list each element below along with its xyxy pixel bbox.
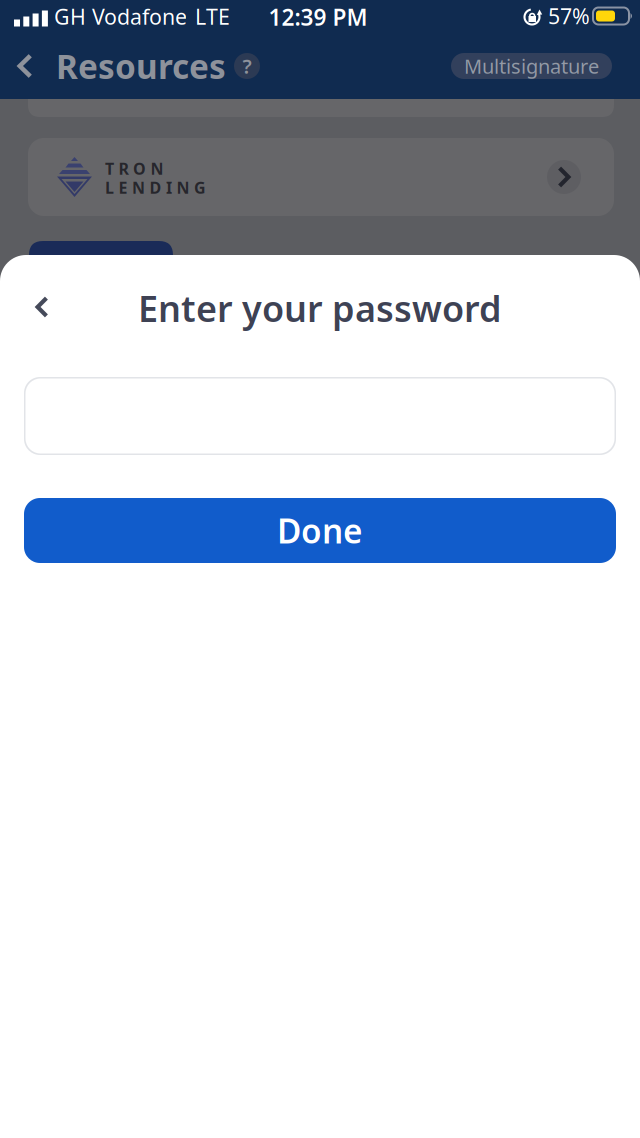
- staticText: Enter your password: [138, 284, 502, 332]
- staticText: Done: [277, 508, 363, 553]
- button[interactable]: TRON: [28, 138, 614, 216]
- button[interactable]: Resources: [56, 44, 226, 88]
- staticText: GH Vodafone: [54, 2, 187, 31]
- button[interactable]: Multisignature: [451, 53, 612, 79]
- staticText: Resources: [56, 44, 226, 88]
- button[interactable]: Help: [226, 53, 260, 79]
- button[interactable]: Back: [20, 285, 64, 329]
- staticText: LENDING: [105, 177, 206, 198]
- staticText: 12:39 PM: [268, 2, 367, 32]
- button[interactable]: Back: [8, 46, 42, 86]
- staticText: ?: [242, 53, 251, 79]
- staticText: LTE: [195, 2, 230, 31]
- staticText: Multisignature: [464, 53, 599, 79]
- staticText: TRON: [105, 158, 163, 179]
- staticText: 57%: [548, 2, 590, 30]
- button[interactable]: Done: [24, 498, 616, 563]
